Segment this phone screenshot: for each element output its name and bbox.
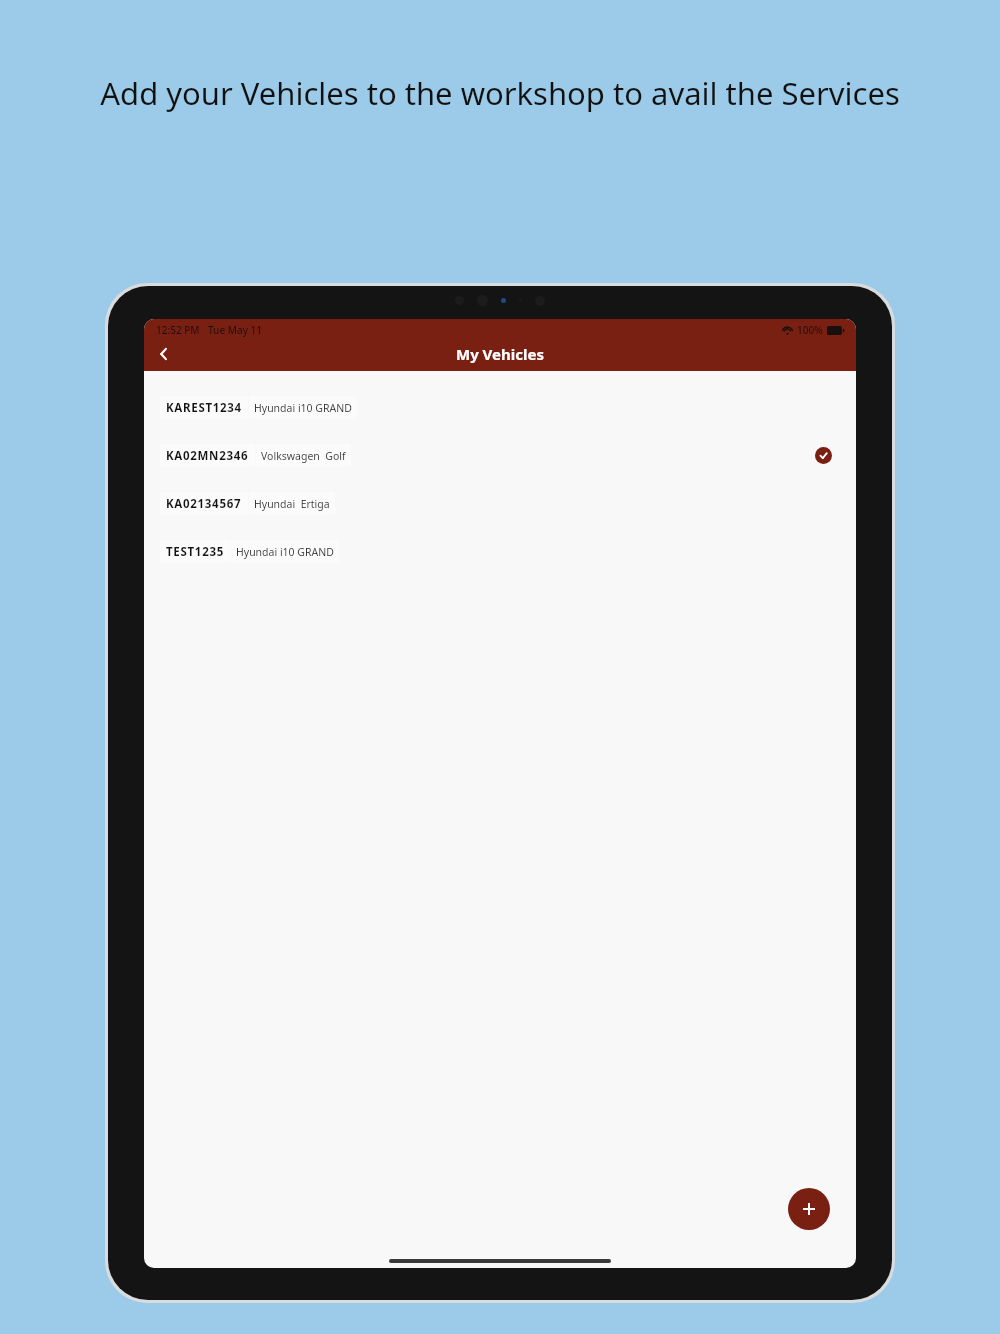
button[interactable]: Add vehicle bbox=[788, 1188, 830, 1230]
button[interactable]: KA02MN2346 bbox=[144, 431, 856, 479]
button[interactable]: KA02134567 bbox=[144, 479, 856, 527]
staticText: Volkswagen Golf bbox=[261, 449, 346, 463]
staticText: Hyundai i10 GRAND bbox=[254, 401, 352, 415]
staticText: KAREST1234 bbox=[166, 400, 242, 416]
staticText: 12:52 PM bbox=[156, 323, 200, 337]
staticText: 100% bbox=[797, 323, 823, 337]
staticText: Tue May 11 bbox=[208, 323, 262, 337]
button[interactable]: KAREST1234 bbox=[144, 383, 856, 431]
button[interactable]: Selected vehicle bbox=[815, 447, 832, 464]
button[interactable]: Back bbox=[144, 337, 184, 371]
staticText: TEST1235 bbox=[166, 544, 224, 560]
staticText: KA02MN2346 bbox=[166, 448, 249, 464]
staticText: Add your Vehicles to the workshop to ava… bbox=[100, 72, 900, 114]
staticText: KA02134567 bbox=[166, 496, 242, 512]
staticText: Hyundai i10 GRAND bbox=[236, 545, 334, 559]
staticText: Hyundai Ertiga bbox=[254, 497, 330, 511]
staticText: My Vehicles bbox=[456, 344, 544, 364]
button[interactable]: TEST1235 bbox=[144, 527, 856, 575]
